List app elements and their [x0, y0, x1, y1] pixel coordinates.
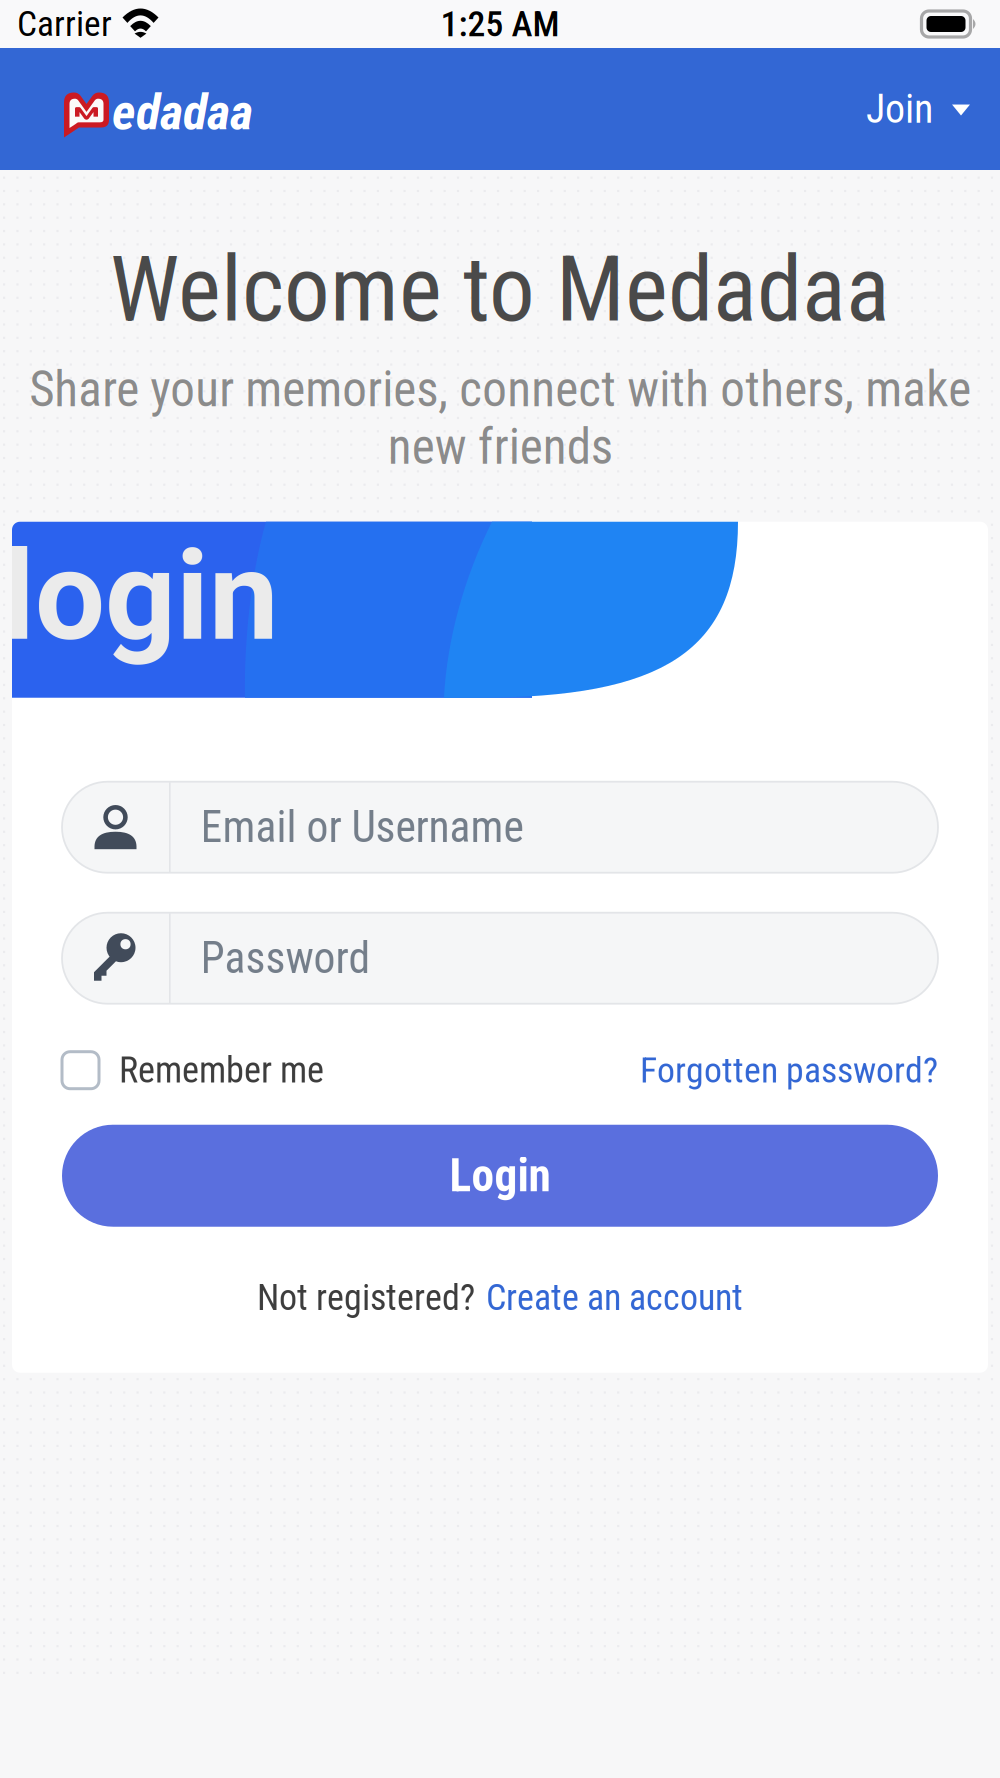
staticText: Login — [449, 1149, 550, 1202]
button[interactable]: Medadaa home — [64, 71, 253, 147]
button[interactable]: Create an account — [486, 1277, 743, 1319]
button[interactable]: Join — [844, 72, 970, 146]
staticText: 1:25 AM — [440, 3, 559, 45]
staticText: edadaa — [112, 82, 253, 142]
staticText: Share your memories, connect with others… — [29, 361, 971, 476]
staticText: Remember me — [119, 1049, 324, 1091]
button[interactable]: Forgotten password? — [640, 1052, 938, 1089]
staticText: Join — [866, 86, 933, 132]
staticText: Forgotten password? — [640, 1049, 938, 1091]
staticText: Not registered? — [257, 1277, 475, 1319]
staticText: Email or Username — [201, 802, 524, 853]
staticText: Create an account — [486, 1277, 743, 1319]
staticText: Password — [201, 933, 371, 984]
staticText: Carrier — [17, 3, 112, 45]
button[interactable]: Remember me — [62, 1052, 324, 1089]
button[interactable]: Login — [62, 1125, 938, 1227]
staticText: Welcome to Medadaa — [110, 236, 890, 343]
staticText: login — [2, 524, 279, 669]
